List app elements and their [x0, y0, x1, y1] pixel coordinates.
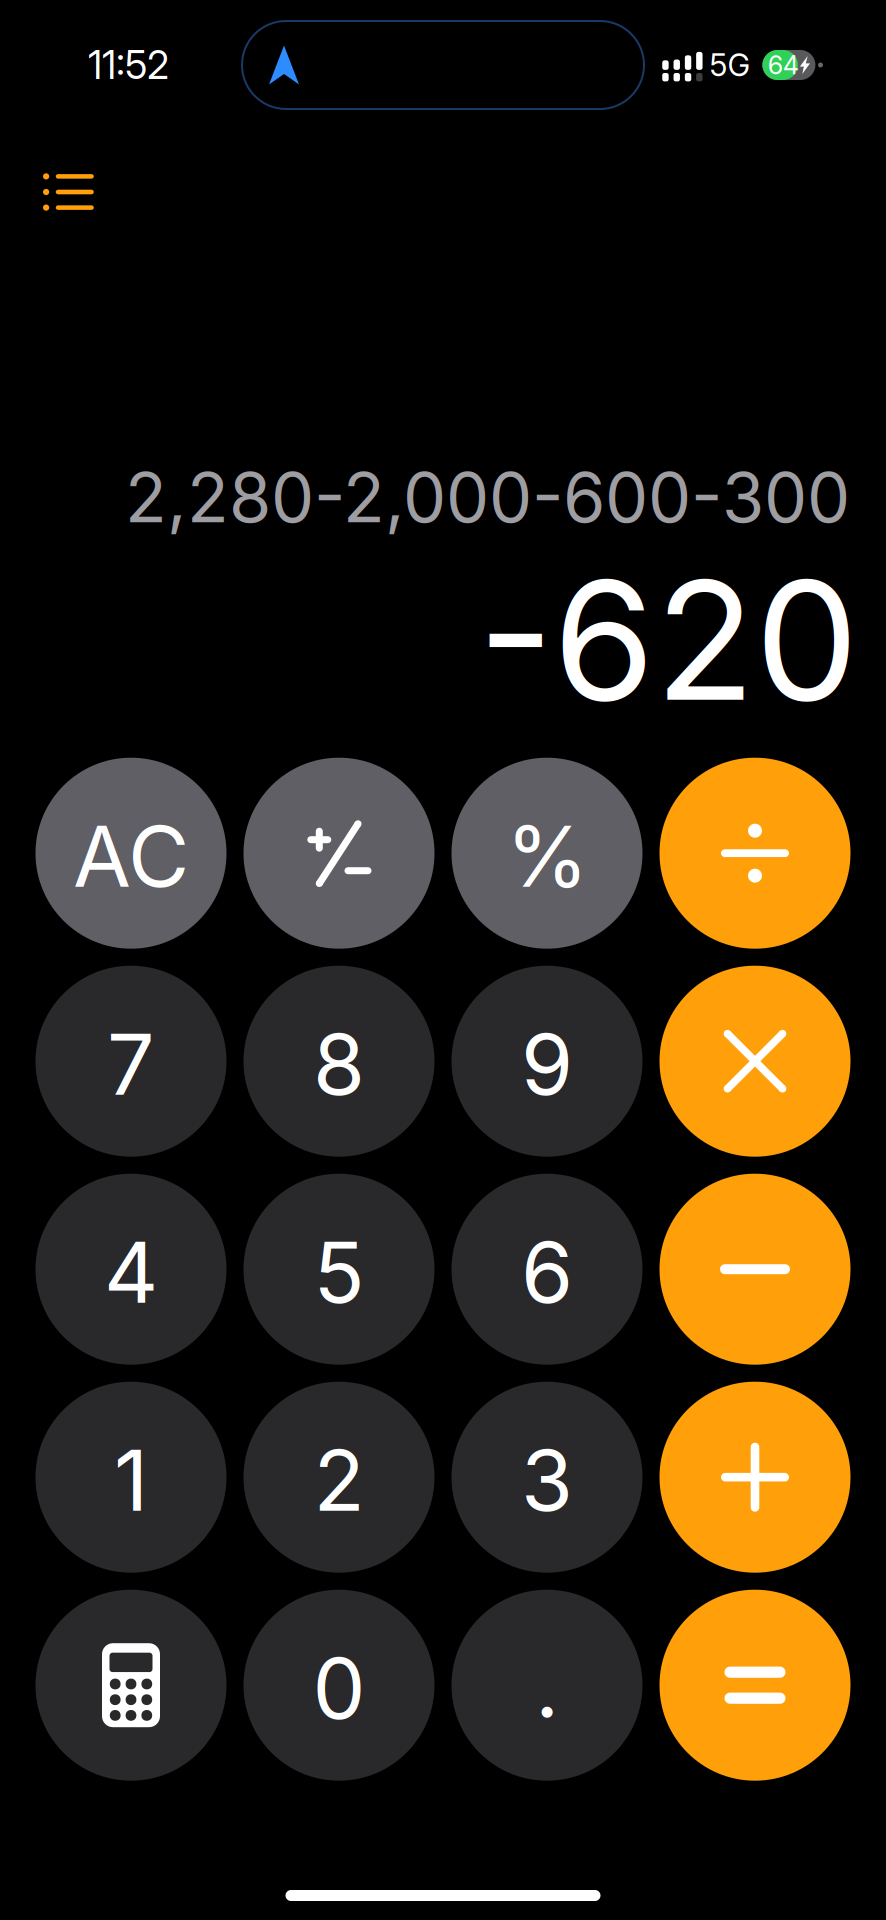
button[interactable]: 4: [35, 1174, 226, 1365]
button[interactable]: Multiply: [659, 966, 850, 1157]
button[interactable]: History: [0, 155, 120, 229]
staticText: 1: [114, 1429, 148, 1531]
staticText: 4: [104, 1221, 158, 1323]
button[interactable]: 8: [243, 966, 434, 1157]
button[interactable]: Divide: [659, 758, 850, 949]
staticText: 7: [107, 1013, 155, 1115]
staticText: 0: [312, 1637, 365, 1739]
button[interactable]: 5: [243, 1174, 434, 1365]
button[interactable]: Plus: [659, 1382, 850, 1573]
staticText: 64: [768, 50, 799, 80]
button[interactable]: 7: [35, 966, 226, 1157]
button[interactable]: 6: [451, 1174, 642, 1365]
button[interactable]: 2: [243, 1382, 434, 1573]
staticText: 2: [313, 1429, 364, 1531]
button[interactable]: 1: [35, 1382, 226, 1573]
staticText: 2,280-2,000-600-300: [125, 456, 850, 539]
staticText: 3: [521, 1429, 573, 1531]
staticText: 9: [521, 1013, 573, 1115]
staticText: 6: [521, 1221, 573, 1323]
staticText: AC: [73, 805, 189, 907]
button[interactable]: All clear: [35, 758, 226, 949]
button[interactable]: Minus: [659, 1174, 850, 1365]
button[interactable]: Percent: [451, 758, 642, 949]
button[interactable]: 9: [451, 966, 642, 1157]
staticText: 11:52: [88, 42, 169, 88]
staticText: 8: [313, 1013, 365, 1115]
staticText: %: [506, 805, 588, 907]
button[interactable]: Equals: [659, 1590, 850, 1781]
button[interactable]: Navigation Live Activity: [242, 21, 644, 109]
button[interactable]: Decimal point: [451, 1590, 642, 1781]
button[interactable]: 0: [243, 1590, 434, 1781]
button[interactable]: Calculator mode: [35, 1590, 226, 1781]
staticText: 5: [313, 1221, 364, 1323]
button[interactable]: Plus minus: [243, 758, 434, 949]
staticText: 5G: [709, 46, 750, 83]
staticText: -620: [478, 541, 858, 739]
staticText: .: [535, 1635, 559, 1737]
button[interactable]: 3: [451, 1382, 642, 1573]
